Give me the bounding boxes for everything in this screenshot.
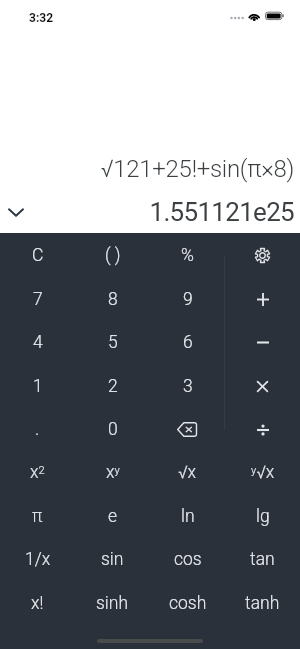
button[interactable]: sinh	[75, 582, 150, 625]
staticText: x2	[30, 462, 45, 483]
button[interactable]: 6	[150, 321, 225, 364]
button[interactable]: lg	[225, 495, 300, 538]
other: Backspace	[177, 422, 198, 438]
button[interactable]: π	[0, 495, 75, 538]
button[interactable]	[225, 278, 300, 321]
staticText: xy	[106, 462, 120, 483]
button[interactable]: sin	[75, 538, 150, 581]
button[interactable]: xy	[75, 451, 150, 494]
staticText: √121+25!+sin(π×8)	[0, 155, 294, 183]
staticText: 6	[183, 332, 193, 353]
staticText: x!	[31, 593, 44, 614]
button[interactable]: tanh	[225, 582, 300, 625]
other: Settings	[254, 247, 271, 264]
button[interactable]	[225, 365, 300, 408]
staticText: 7	[33, 289, 43, 310]
staticText: cos	[174, 549, 202, 570]
button[interactable]: √x	[150, 451, 225, 494]
button[interactable]: cos	[150, 538, 225, 581]
staticText: 3	[183, 376, 193, 397]
staticText: 4	[33, 332, 43, 353]
button[interactable]: e	[75, 495, 150, 538]
button[interactable]: 8	[75, 278, 150, 321]
staticText: sinh	[96, 593, 129, 614]
button[interactable]: 1/x	[0, 538, 75, 581]
staticText: sin	[101, 549, 124, 570]
staticText: lg	[256, 506, 270, 527]
staticText: 5	[108, 332, 118, 353]
button[interactable]: tan	[225, 538, 300, 581]
staticText: 8	[108, 289, 118, 310]
staticText: tan	[250, 549, 275, 570]
button[interactable]: x2	[0, 451, 75, 494]
button[interactable]: 7	[0, 278, 75, 321]
button[interactable]: ( )	[75, 234, 150, 277]
staticText: 3:32	[29, 11, 54, 25]
staticText: %	[181, 245, 194, 266]
button[interactable]: 9	[150, 278, 225, 321]
staticText: .	[35, 419, 40, 440]
staticText: C	[32, 245, 44, 266]
staticText: √x	[178, 462, 197, 483]
button[interactable]: cosh	[150, 582, 225, 625]
staticText: 0	[108, 419, 118, 440]
button[interactable]: C	[0, 234, 75, 277]
button[interactable]: 0	[75, 408, 150, 451]
button[interactable]: .	[0, 408, 75, 451]
button[interactable]: %	[150, 234, 225, 277]
button[interactable]: Backspace	[150, 408, 225, 451]
button[interactable]: y√x	[225, 451, 300, 494]
staticText: 1/x	[25, 549, 51, 570]
staticText: y√x	[251, 462, 275, 483]
staticText: ln	[181, 506, 195, 527]
button[interactable]: Expand history	[2, 198, 30, 226]
staticText: 1	[33, 376, 43, 397]
button[interactable]	[225, 321, 300, 364]
staticText: 9	[183, 289, 193, 310]
staticText: 2	[108, 376, 118, 397]
staticText: π	[32, 506, 43, 527]
button[interactable]: 1	[0, 365, 75, 408]
staticText: cosh	[169, 593, 207, 614]
button[interactable]: 3	[150, 365, 225, 408]
button[interactable]: 4	[0, 321, 75, 364]
staticText: tanh	[245, 593, 280, 614]
staticText: e	[108, 506, 118, 527]
staticText: ( )	[105, 245, 121, 266]
button[interactable]: 5	[75, 321, 150, 364]
staticText: 1.551121e25	[0, 197, 294, 227]
button[interactable]: Settings	[225, 234, 300, 277]
button[interactable]	[225, 408, 300, 451]
button[interactable]: ln	[150, 495, 225, 538]
button[interactable]: 2	[75, 365, 150, 408]
button[interactable]: x!	[0, 582, 75, 625]
